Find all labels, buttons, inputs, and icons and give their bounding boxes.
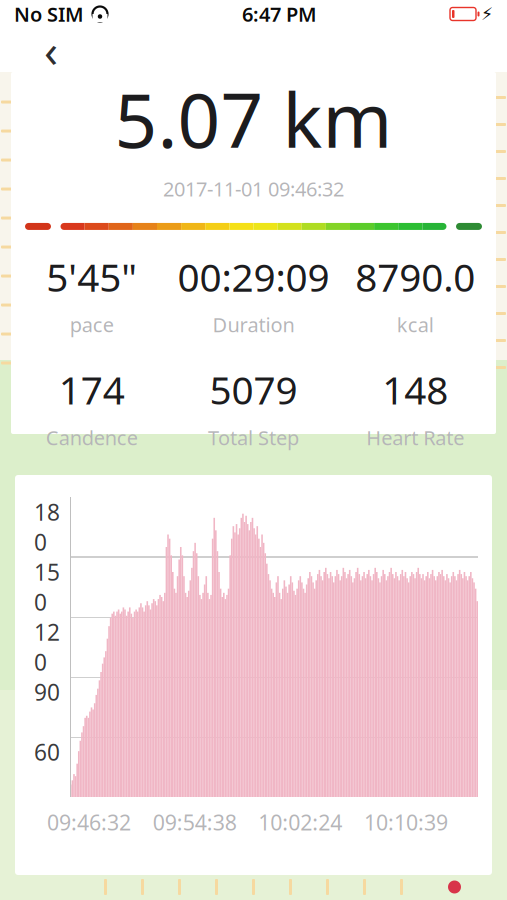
staticText: 2017-11-01 09:46:32: [163, 175, 344, 202]
staticText: 10:02:24: [258, 808, 342, 836]
staticText: 5'45": [46, 251, 137, 302]
staticText: 09:46:32: [47, 808, 131, 836]
staticText: 148: [382, 364, 448, 415]
staticText: Heart Rate: [366, 424, 464, 451]
staticText: 60: [34, 737, 60, 767]
staticText: 6:47 PM: [242, 1, 317, 27]
staticText: pace: [70, 311, 114, 338]
staticText: Total Step: [208, 424, 299, 451]
staticText: No SIM: [14, 1, 84, 27]
staticText: 5.07 km: [114, 69, 392, 168]
staticText: 09:54:38: [153, 808, 237, 836]
staticText: Candence: [46, 424, 138, 451]
staticText: 8790.0: [355, 251, 475, 302]
staticText: Duration: [212, 311, 294, 338]
staticText: 10:10:39: [364, 808, 448, 836]
staticText: 150: [34, 557, 60, 617]
staticText: kcal: [397, 311, 434, 338]
staticText: 90: [34, 677, 60, 707]
staticText: 120: [34, 617, 60, 677]
staticText: ‹: [44, 20, 58, 80]
staticText: ⚡︎: [481, 4, 493, 24]
staticText: 174: [59, 364, 125, 415]
staticText: 5079: [209, 364, 297, 415]
button[interactable]: Back: [26, 28, 76, 72]
staticText: 00:29:09: [177, 251, 329, 302]
staticText: 180: [34, 497, 60, 557]
